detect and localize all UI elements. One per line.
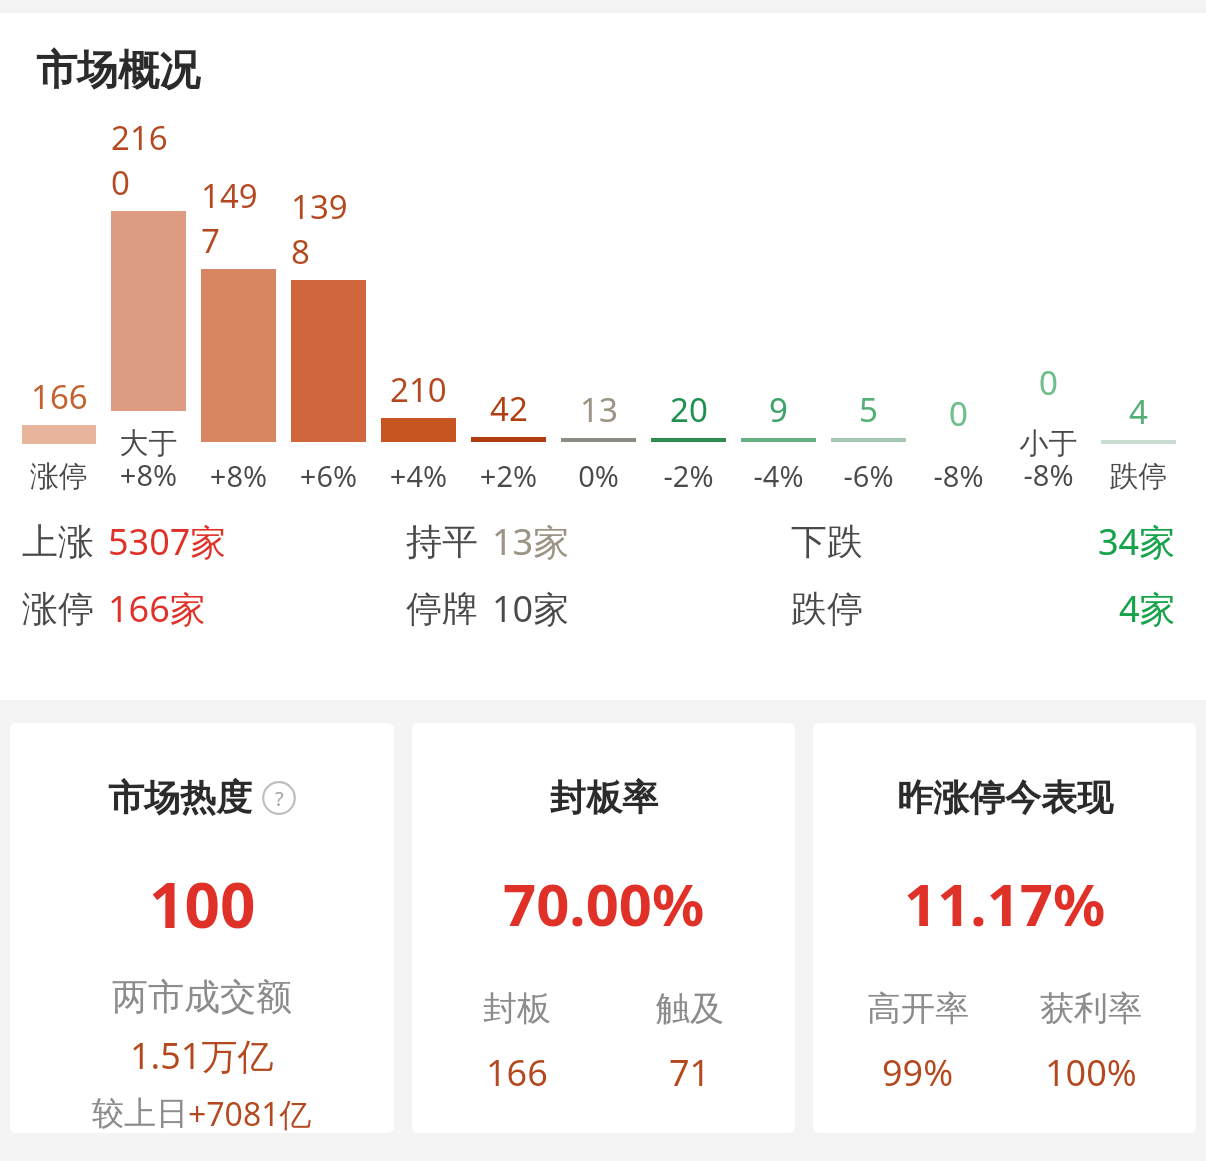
staticText: 触及 <box>656 987 724 1030</box>
button[interactable]: 1497 <box>201 146 276 495</box>
staticText: 市场热度 <box>108 775 252 820</box>
staticText: 较上日 <box>92 1093 188 1133</box>
staticText: 上涨 <box>22 519 94 564</box>
staticText: 0 <box>949 391 968 436</box>
button[interactable]: 0 <box>1011 115 1086 495</box>
staticText: +6% <box>291 456 366 495</box>
staticText: 2160 <box>111 115 186 205</box>
staticText: -8% <box>921 456 996 495</box>
staticText: 1497 <box>201 173 276 263</box>
staticText: 13 <box>580 387 618 432</box>
button[interactable]: 210 <box>381 146 456 495</box>
staticText: 166家 <box>108 584 206 633</box>
staticText: -2% <box>651 456 726 495</box>
button[interactable]: 昨涨停今表现 <box>813 723 1196 1133</box>
staticText: 9 <box>769 387 788 432</box>
staticText: 持平 <box>406 519 478 564</box>
staticText: -6% <box>831 456 906 495</box>
staticText: 4 <box>1129 389 1148 434</box>
staticText: ? <box>275 785 284 812</box>
button[interactable]: 上涨 <box>22 517 406 566</box>
staticText: 停牌 <box>406 586 478 631</box>
staticText: 42 <box>490 386 528 431</box>
button[interactable]: 市场热度 <box>10 723 394 1133</box>
staticText: 跌停 <box>791 586 863 631</box>
staticText: 1398 <box>291 184 366 274</box>
button[interactable]: 停牌 <box>406 584 791 633</box>
staticText: 11.17% <box>904 864 1106 943</box>
button[interactable]: 跌停 <box>791 584 1176 633</box>
button[interactable]: 1398 <box>291 146 366 495</box>
staticText: 封板 <box>483 987 551 1030</box>
staticText: 166 <box>486 1048 548 1097</box>
staticText: 5307家 <box>108 517 227 566</box>
staticText: 跌停 <box>1101 458 1176 495</box>
staticText: 昨涨停今表现 <box>897 775 1113 820</box>
button[interactable]: 2160 <box>111 115 186 495</box>
staticText: 下跌 <box>791 519 863 564</box>
staticText: 市场概况 <box>36 45 200 97</box>
staticText: 0 <box>1039 360 1058 405</box>
staticText: 1.51万亿 <box>130 1031 274 1080</box>
staticText: 小于 -8% <box>1011 425 1086 495</box>
staticText: 34家 <box>1098 517 1176 566</box>
staticText: 166 <box>31 374 88 419</box>
staticText: 99% <box>882 1048 954 1097</box>
button[interactable]: 5 <box>831 146 906 495</box>
staticText: 0% <box>561 456 636 495</box>
staticText: +8% <box>201 456 276 495</box>
staticText: 高开率 <box>867 987 969 1030</box>
staticText: 10家 <box>492 584 570 633</box>
staticText: -4% <box>741 456 816 495</box>
staticText: +7081亿 <box>188 1092 312 1133</box>
button[interactable]: 市场热度说明 <box>262 781 296 815</box>
staticText: 100% <box>1045 1048 1137 1097</box>
staticText: +4% <box>381 456 456 495</box>
button[interactable]: 166 <box>22 148 96 495</box>
button[interactable]: 0 <box>921 146 996 495</box>
button[interactable]: 持平 <box>406 517 791 566</box>
button[interactable]: 封板率 <box>412 723 795 1133</box>
button[interactable]: 4 <box>1101 148 1176 495</box>
staticText: 4家 <box>1119 584 1176 633</box>
staticText: 13家 <box>492 517 570 566</box>
button[interactable]: 下跌 <box>791 517 1176 566</box>
staticText: 大于 +8% <box>111 425 186 495</box>
staticText: +2% <box>471 456 546 495</box>
staticText: 两市成交额 <box>112 974 292 1019</box>
staticText: 71 <box>669 1048 711 1097</box>
staticText: 100 <box>149 862 256 946</box>
button[interactable]: 20 <box>651 146 726 495</box>
button[interactable]: 42 <box>471 146 546 495</box>
staticText: 涨停 <box>22 586 94 631</box>
staticText: 210 <box>390 367 447 412</box>
staticText: 70.00% <box>503 864 705 943</box>
staticText: 20 <box>670 387 708 432</box>
button[interactable]: 涨停 <box>22 584 406 633</box>
staticText: 封板率 <box>550 775 658 820</box>
staticText: 5 <box>859 387 878 432</box>
button[interactable]: 13 <box>561 146 636 495</box>
button[interactable]: 9 <box>741 146 816 495</box>
staticText: 获利率 <box>1040 987 1142 1030</box>
staticText: 涨停 <box>22 458 96 495</box>
